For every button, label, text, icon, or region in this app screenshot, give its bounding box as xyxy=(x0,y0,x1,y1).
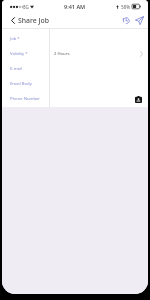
button[interactable]: Choose contact xyxy=(133,94,143,104)
staticText: Email Body xyxy=(10,81,32,87)
staticText: E-mail xyxy=(10,66,23,72)
button[interactable]: Share Job xyxy=(2,13,54,28)
staticText: 9:41 AM xyxy=(64,3,86,10)
staticText: 3G xyxy=(23,4,29,10)
button[interactable]: Job * xyxy=(2,31,148,46)
staticText: Share Job xyxy=(18,16,50,25)
button[interactable]: Email Body xyxy=(2,76,148,91)
button[interactable]: Phone Number xyxy=(2,91,148,106)
button[interactable]: E-mail xyxy=(2,61,148,76)
button[interactable]: Validity * xyxy=(2,46,148,61)
button[interactable]: Send xyxy=(132,13,146,28)
staticText: 2 Hours xyxy=(54,51,70,57)
staticText: 58% xyxy=(121,4,130,10)
staticText: Job * xyxy=(10,36,20,42)
staticText: Phone Number xyxy=(10,96,41,102)
button[interactable]: History xyxy=(118,13,132,28)
staticText: Validity * xyxy=(10,51,28,57)
